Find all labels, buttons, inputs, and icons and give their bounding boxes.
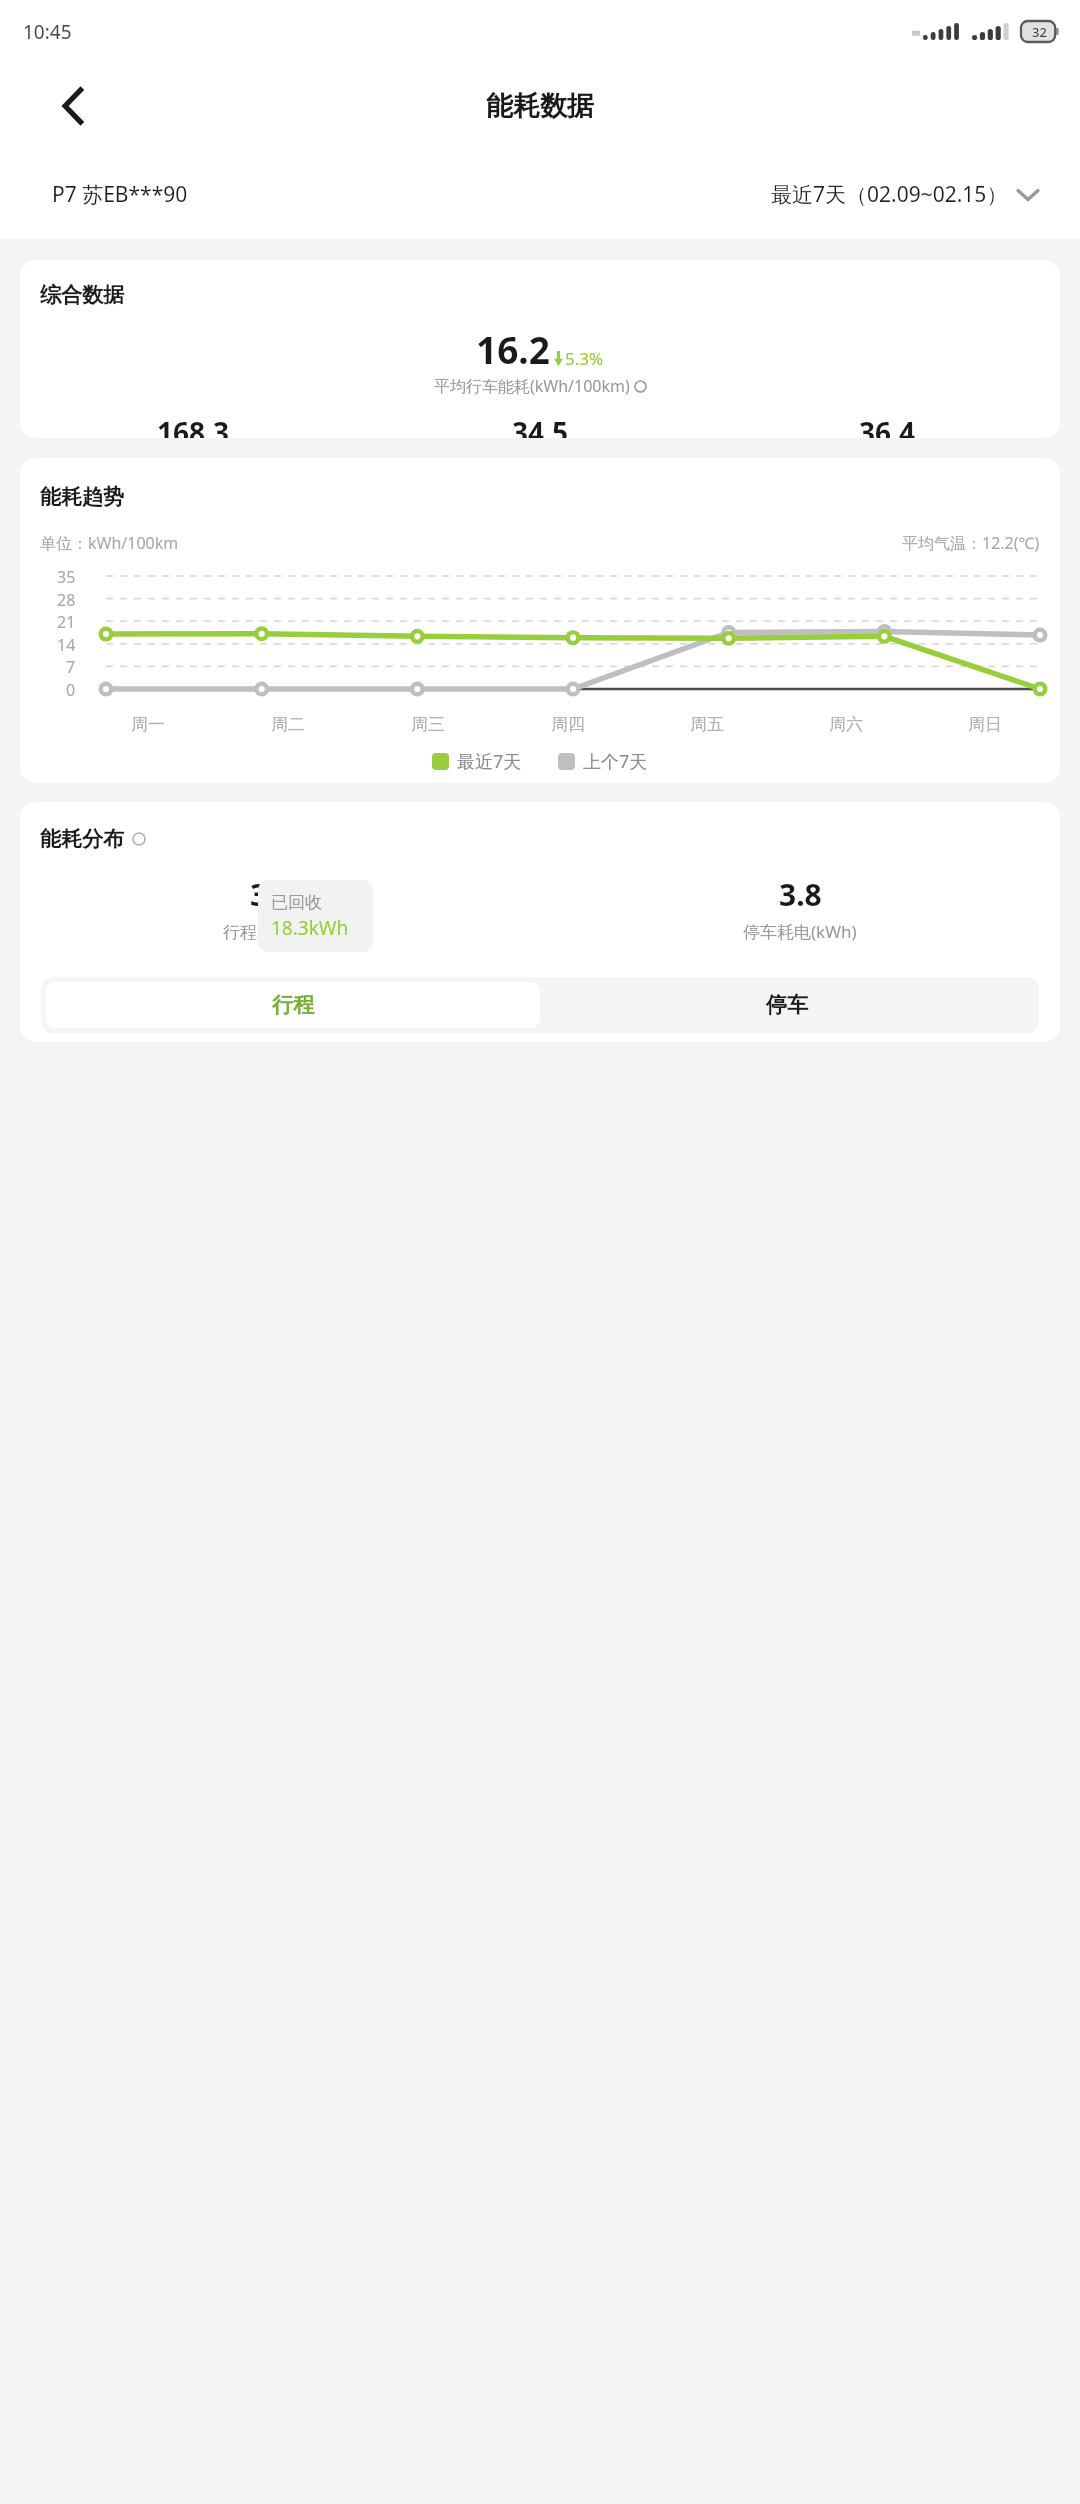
button[interactable]: 最近7天（02.09~02.15）	[771, 180, 1038, 209]
staticText: 能耗数据	[486, 89, 594, 123]
staticText: 最近7天	[457, 749, 522, 774]
staticText: 上个7天	[583, 749, 648, 774]
staticText: 18.3kWh	[271, 915, 349, 941]
button[interactable]: 已回收	[258, 880, 373, 952]
staticText: P7 苏EB***90	[52, 180, 188, 209]
staticText: 最近7天（02.09~02.15）	[771, 180, 1008, 209]
button[interactable]: 最近7天	[432, 749, 522, 774]
staticText: 平均气温：12.2(℃)	[902, 532, 1040, 554]
staticText: 34.5	[512, 413, 568, 438]
staticText: 16.2	[476, 324, 550, 374]
staticText: 周一	[131, 714, 165, 735]
staticText: 32	[1032, 23, 1047, 41]
staticText: 平均行车能耗(kWh/100km)	[434, 375, 630, 397]
staticText: 行程耗电(kWh)	[223, 920, 337, 943]
staticText: 停车	[766, 992, 808, 1018]
staticText: 168.3	[157, 413, 229, 438]
button[interactable]: 行程	[46, 982, 540, 1028]
staticText: 能耗分布	[40, 826, 124, 852]
staticText: 10:45	[23, 19, 72, 45]
button[interactable]: 上个7天	[558, 749, 648, 774]
staticText: 3.8	[779, 874, 822, 915]
staticText: 综合数据	[40, 282, 124, 308]
staticText: 周五	[690, 714, 724, 735]
staticText: 已回收	[271, 892, 322, 913]
staticText: 0	[66, 679, 76, 701]
staticText: 周二	[271, 714, 305, 735]
staticText: 14	[57, 634, 76, 656]
staticText: 能耗趋势	[40, 484, 124, 510]
staticText: 行程	[272, 992, 314, 1018]
staticText: 停车耗电(kWh)	[743, 920, 857, 943]
staticText: 周日	[968, 714, 1002, 735]
staticText: 5.3%	[565, 347, 604, 370]
staticText: 单位：kWh/100km	[40, 532, 179, 554]
staticText: 周四	[551, 714, 585, 735]
staticText: 7	[66, 656, 76, 678]
staticText: 30.7	[250, 874, 310, 915]
button[interactable]: 停车	[540, 982, 1034, 1028]
staticText: 36.4	[859, 413, 915, 438]
button[interactable]: Back	[50, 83, 96, 129]
staticText: 周六	[829, 714, 863, 735]
staticText: 28	[57, 589, 76, 611]
staticText: 35	[57, 566, 76, 588]
staticText: 周三	[411, 714, 445, 735]
staticText: 21	[57, 611, 76, 633]
